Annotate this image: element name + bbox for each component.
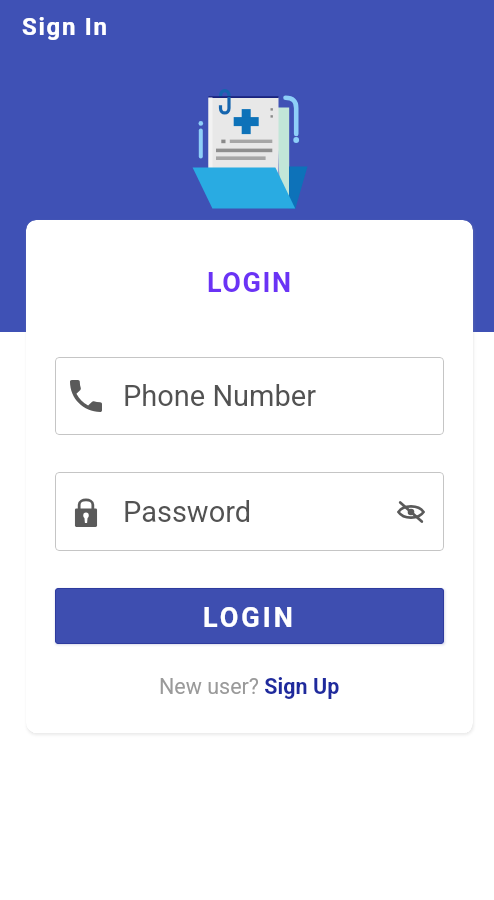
button[interactable]: New user? Sign Up [159, 674, 340, 699]
staticText: LOGIN [207, 267, 293, 299]
staticText: Password [123, 495, 252, 529]
button[interactable]: Password [55, 472, 444, 551]
staticText: Sign In [22, 13, 109, 41]
staticText: Phone Number [123, 379, 316, 413]
staticText: LOGIN [203, 602, 296, 634]
button[interactable]: LOGIN [55, 588, 444, 644]
button[interactable]: Show password [394, 493, 432, 531]
staticText: New user? Sign Up [159, 674, 340, 699]
button[interactable]: Phone Number [55, 357, 444, 435]
